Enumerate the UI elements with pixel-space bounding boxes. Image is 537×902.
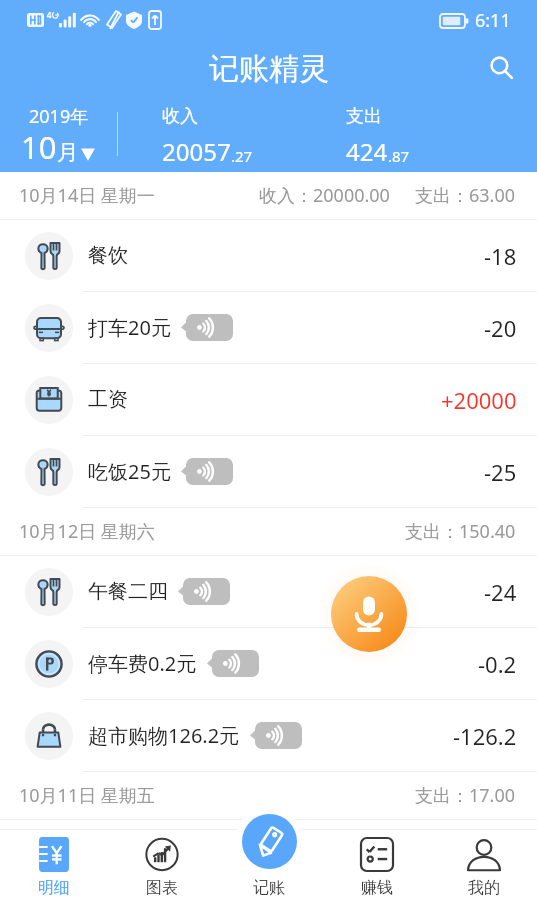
staticText: 停车费0.2元 — [88, 650, 197, 677]
staticText: 支出：63.00 — [415, 183, 516, 208]
staticText: -20 — [484, 313, 517, 343]
staticText: 支出：17.00 — [415, 783, 516, 808]
staticText: 餐饮 — [88, 243, 128, 268]
staticText: 10月11日 星期五 — [19, 783, 155, 808]
button[interactable]: 赚钱 — [323, 830, 430, 902]
staticText: 424 — [346, 135, 388, 168]
staticText: 图表 — [146, 878, 178, 898]
button[interactable]: 餐饮 — [0, 220, 537, 292]
staticText: 记账精灵 — [209, 50, 329, 88]
button[interactable]: 语音记账 — [331, 576, 407, 652]
staticText: 6:11 — [475, 8, 511, 33]
staticText: 10 — [21, 126, 57, 168]
staticText: 工资 — [88, 387, 128, 412]
staticText: +20000 — [441, 385, 517, 415]
button[interactable]: 明细 — [0, 830, 108, 902]
staticText: 我的 — [468, 878, 500, 898]
button[interactable]: 图表 — [108, 830, 216, 902]
button[interactable]: 超市购物126.2元 — [0, 700, 537, 772]
staticText: -126.2 — [453, 721, 517, 751]
staticText: .27 — [231, 146, 253, 166]
staticText: -18 — [484, 241, 517, 271]
staticText: 吃饭25元 — [88, 458, 171, 485]
staticText: 赚钱 — [361, 878, 393, 898]
button[interactable]: 记账 — [235, 807, 303, 875]
staticText: 20057 — [162, 135, 231, 168]
staticText: 月 — [57, 139, 79, 167]
button[interactable]: 打车20元 — [0, 292, 537, 364]
staticText: 午餐二四 — [88, 579, 168, 604]
staticText: 收入：20000.00 — [259, 183, 390, 208]
staticText: .87 — [388, 146, 410, 166]
staticText: -25 — [484, 457, 517, 487]
button[interactable]: 我的 — [430, 830, 537, 902]
button[interactable]: 2019年 — [0, 96, 118, 172]
staticText: 记账 — [253, 878, 285, 898]
staticText: 10月14日 星期一 — [19, 183, 155, 208]
staticText: 明细 — [38, 878, 70, 898]
staticText: 支出 — [346, 105, 382, 128]
staticText: 打车20元 — [88, 314, 171, 341]
staticText: 支出：150.40 — [405, 519, 516, 544]
staticText: 10月12日 星期六 — [19, 519, 155, 544]
button[interactable]: 午餐二四 — [0, 556, 537, 628]
button[interactable]: 搜索 — [479, 45, 525, 91]
staticText: 2019年 — [29, 104, 89, 129]
button[interactable]: 停车费0.2元 — [0, 628, 537, 700]
button[interactable]: 吃饭25元 — [0, 436, 537, 508]
button[interactable]: 工资 — [0, 364, 537, 436]
staticText: -0.2 — [478, 649, 517, 679]
staticText: -24 — [484, 577, 517, 607]
staticText: 收入 — [162, 105, 198, 128]
staticText: 超市购物126.2元 — [88, 722, 240, 749]
